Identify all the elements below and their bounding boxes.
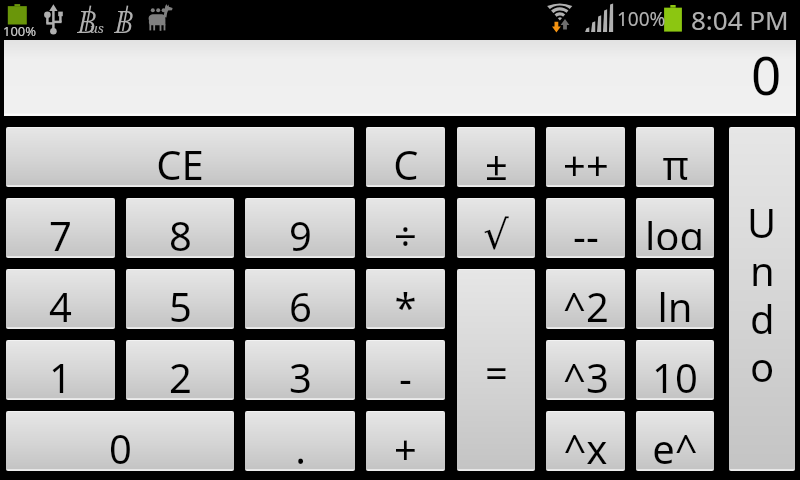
button[interactable]: = [457, 269, 535, 471]
staticText: * [394, 279, 417, 329]
staticText: ln [657, 279, 693, 329]
button[interactable]: 2 [126, 340, 234, 400]
button[interactable]: ÷ [366, 198, 445, 258]
staticText: ^x [563, 421, 608, 471]
staticText: ++ [563, 137, 609, 187]
button[interactable]: √ [457, 198, 535, 258]
button[interactable]: ++ [546, 127, 625, 187]
staticText: ^3 [563, 350, 609, 400]
button[interactable]: ± [457, 127, 535, 187]
staticText: - [399, 350, 412, 400]
button[interactable]: 7 [6, 198, 115, 258]
staticText: + [394, 421, 417, 471]
staticText: 2 [169, 350, 192, 400]
staticText: 7 [49, 208, 72, 258]
button[interactable]: ^x [546, 411, 625, 471]
button[interactable]: * [366, 269, 445, 329]
button[interactable]: 6 [245, 269, 355, 329]
button[interactable]: U [729, 127, 795, 471]
button[interactable]: 1 [6, 340, 115, 400]
button[interactable]: ln [636, 269, 714, 329]
button[interactable]: π [636, 127, 714, 187]
staticText: log [645, 208, 705, 250]
button[interactable]: 9 [245, 198, 355, 258]
staticText: CE [156, 137, 204, 187]
staticText: = [485, 345, 508, 399]
staticText: π [662, 137, 689, 187]
button[interactable]: 3 [245, 340, 355, 400]
staticText: U [747, 195, 777, 243]
button[interactable]: e^ [636, 411, 714, 471]
staticText: 1 [49, 350, 72, 400]
staticText: 5 [169, 279, 192, 329]
staticText: ÷ [394, 208, 417, 258]
button[interactable]: + [366, 411, 445, 471]
button[interactable]: 5 [126, 269, 234, 329]
staticText: 8 [169, 208, 192, 258]
button[interactable]: log [636, 198, 714, 258]
staticText: d [750, 291, 775, 339]
staticText: C [393, 137, 419, 187]
button[interactable]: ^3 [546, 340, 625, 400]
staticText: 6 [289, 279, 312, 329]
staticText: 10 [652, 350, 698, 400]
staticText: 100% [617, 6, 666, 32]
staticText: -- [573, 208, 599, 258]
button[interactable]: 4 [6, 269, 115, 329]
button[interactable]: -- [546, 198, 625, 258]
staticText: B [77, 0, 97, 36]
staticText: 0 [751, 38, 782, 110]
button[interactable]: 10 [636, 340, 714, 400]
button[interactable]: - [366, 340, 445, 400]
button[interactable]: 0 [6, 411, 234, 471]
staticText: . [295, 421, 306, 471]
button[interactable]: C [366, 127, 445, 187]
staticText: e^ [652, 421, 698, 471]
staticText: o [750, 339, 775, 387]
staticText: √ [483, 212, 509, 258]
staticText: us [90, 19, 104, 37]
staticText: n [750, 243, 775, 291]
staticText: 8:04 PM [691, 2, 789, 37]
staticText: 9 [289, 208, 312, 258]
staticText: 3 [289, 350, 312, 400]
button[interactable]: ^2 [546, 269, 625, 329]
staticText: ± [485, 137, 508, 187]
staticText: B [114, 0, 134, 36]
staticText: 100% [3, 22, 37, 40]
staticText: 0 [109, 421, 132, 471]
button[interactable]: 8 [126, 198, 234, 258]
staticText: ^2 [563, 279, 609, 329]
button[interactable]: CE [6, 127, 354, 187]
staticText: 4 [49, 279, 72, 329]
button[interactable]: . [245, 411, 355, 471]
